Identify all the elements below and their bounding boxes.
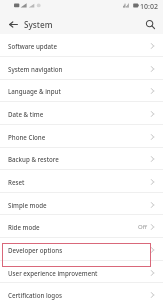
button[interactable]: Developer options [0,238,163,261]
button[interactable]: Certification logos [0,283,163,300]
staticText: System navigation [8,65,63,73]
staticText: Developer options [8,246,63,254]
staticText: System [24,19,53,30]
button[interactable]: Language & input [0,79,163,102]
button[interactable]: Software update [0,34,163,57]
button[interactable]: Backup & restore [0,147,163,170]
button[interactable]: Simple mode [0,193,163,216]
button[interactable]: Date & time [0,102,163,125]
staticText: Certification logos [8,291,62,299]
button[interactable]: Search [140,14,160,34]
button[interactable]: Back [3,14,24,35]
staticText: Software update [8,42,57,50]
staticText: Simple mode [8,201,47,209]
button[interactable]: Reset [0,170,163,193]
button[interactable]: Ride mode [0,215,163,238]
staticText: User experience improvement [8,269,98,277]
button[interactable]: User experience improvement [0,261,163,284]
staticText: Backup & restore [8,155,59,163]
staticText: Phone Clone [8,133,46,141]
staticText: Date & time [8,110,44,118]
staticText: Reset [8,178,25,186]
staticText: Ride mode [8,223,40,231]
button[interactable]: System navigation [0,57,163,80]
staticText: Off [138,223,147,231]
staticText: 10:02 [140,2,158,12]
staticText: Language & input [8,87,61,95]
button[interactable]: Phone Clone [0,125,163,148]
